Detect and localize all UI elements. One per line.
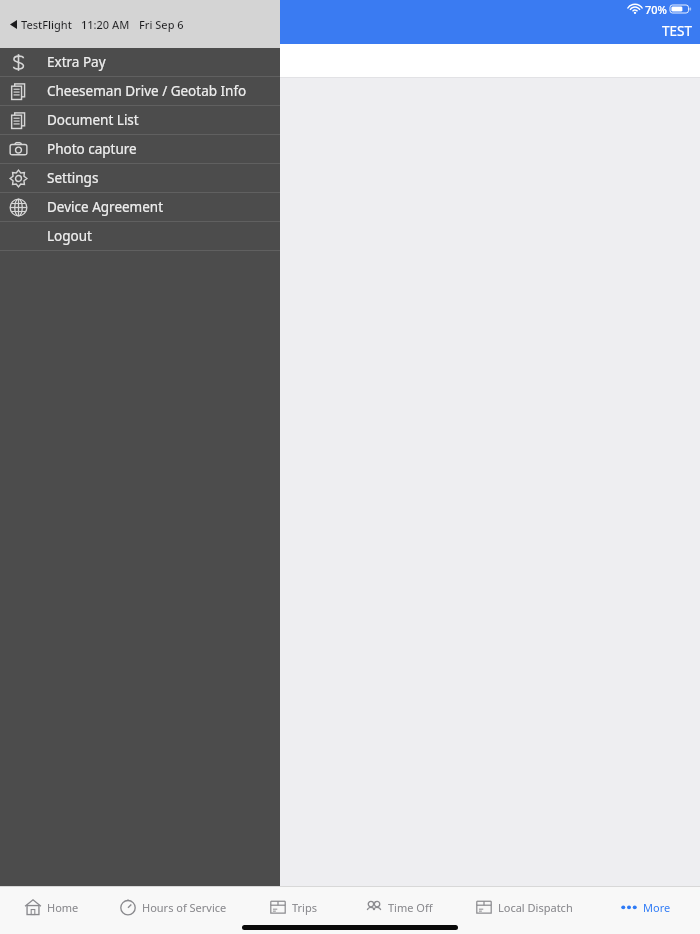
staticText: 70%: [645, 2, 667, 17]
button[interactable]: Device Agreement: [0, 193, 280, 222]
staticText: Time Off: [388, 900, 433, 915]
staticText: Cheeseman Drive / Geotab Info: [47, 82, 247, 100]
staticText: 11:20 AM: [81, 17, 130, 32]
staticText: Document List: [47, 111, 139, 129]
staticText: Local Dispatch: [498, 900, 573, 915]
staticText: Trips: [292, 900, 317, 915]
button[interactable]: Extra Pay: [0, 48, 280, 77]
staticText: Home: [47, 900, 79, 915]
staticText: TEST: [662, 22, 692, 40]
button[interactable]: Home: [0, 889, 103, 925]
staticText: Extra Pay: [47, 53, 106, 71]
button[interactable]: Hours of Service: [103, 889, 243, 925]
staticText: Device Agreement: [47, 198, 164, 216]
staticText: Photo capture: [47, 140, 137, 158]
button[interactable]: TEST: [662, 22, 692, 40]
button[interactable]: Local Dispatch: [456, 889, 591, 925]
button[interactable]: Settings: [0, 164, 280, 193]
button[interactable]: More: [591, 889, 700, 925]
button[interactable]: Trips: [243, 889, 342, 925]
staticText: More: [643, 900, 671, 915]
button[interactable]: Document List: [0, 106, 280, 135]
staticText: Settings: [47, 169, 99, 187]
staticText: TestFlight: [21, 17, 72, 32]
staticText: Fri Sep 6: [139, 17, 184, 32]
staticText: Logout: [47, 227, 92, 245]
button[interactable]: Photo capture: [0, 135, 280, 164]
button[interactable]: Logout: [0, 222, 280, 251]
button[interactable]: Cheeseman Drive / Geotab Info: [0, 77, 280, 106]
button[interactable]: Time Off: [342, 889, 456, 925]
staticText: Hours of Service: [142, 900, 227, 915]
staticText: Rest in 8:00: [28, 22, 101, 40]
